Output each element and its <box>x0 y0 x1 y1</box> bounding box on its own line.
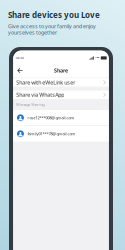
staticText: Manage Sharing <box>16 102 44 107</box>
button[interactable]: Share with eWeLink user <box>13 78 109 87</box>
staticText: Give access to your family and enjoy you… <box>8 23 96 36</box>
staticText: 14:30 <box>15 56 24 60</box>
staticText: family01***78@gmail.com <box>27 131 75 136</box>
staticText: Share via WhatsApp <box>16 91 64 98</box>
button[interactable]: Back <box>16 66 25 75</box>
staticText: Share devices you Love <box>8 9 100 20</box>
button[interactable]: family01***78@gmail.com <box>13 126 109 142</box>
staticText: rose12***008@gmail.com <box>27 115 74 120</box>
button[interactable]: rose12***008@gmail.com <box>13 110 109 126</box>
staticText: Share <box>54 67 68 74</box>
button[interactable]: Share via WhatsApp <box>13 91 109 99</box>
staticText: Share with eWeLink user <box>16 79 75 86</box>
